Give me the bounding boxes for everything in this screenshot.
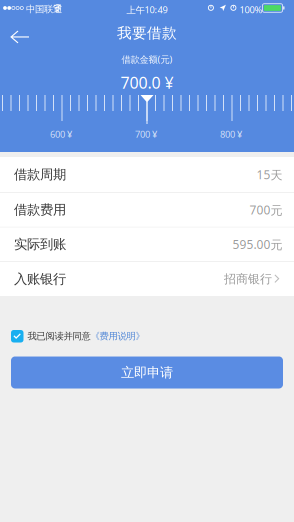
staticText: 借款费用 [14, 202, 66, 218]
staticText: 我已阅读并同意 [27, 330, 90, 342]
staticText: 700元 [249, 202, 282, 218]
staticText: 700.0 ¥ [120, 72, 173, 93]
staticText: 800 ¥ [220, 128, 242, 140]
button[interactable]: 立即申请 [11, 356, 283, 388]
staticText: 15天 [256, 167, 282, 183]
staticText: 700 ¥ [135, 128, 157, 140]
staticText: 借款周期 [14, 166, 66, 183]
staticText: 入账银行 [14, 271, 66, 287]
button[interactable]: 实际到账 [0, 227, 294, 262]
staticText: 我要借款 [117, 24, 177, 42]
button[interactable]: 借款费用 [0, 193, 294, 227]
button[interactable]: 我已阅读并同意 [0, 325, 150, 347]
staticText: 招商银行 [224, 272, 272, 286]
button[interactable]: 入账银行 [0, 262, 294, 296]
button[interactable]: 借款周期 [0, 157, 294, 193]
staticText: 立即申请 [121, 364, 173, 381]
staticText: 上午10:49 [126, 3, 167, 16]
staticText: 实际到账 [14, 236, 66, 253]
button[interactable]: Back [0, 24, 54, 50]
staticText: 595.00元 [232, 236, 282, 252]
staticText: 《费用说明》 [90, 330, 144, 342]
staticText: 600 ¥ [50, 128, 72, 140]
staticText: 借款金额(元) [121, 53, 172, 65]
staticText: 中国联通 [26, 3, 62, 15]
staticText: 100% [239, 3, 262, 16]
